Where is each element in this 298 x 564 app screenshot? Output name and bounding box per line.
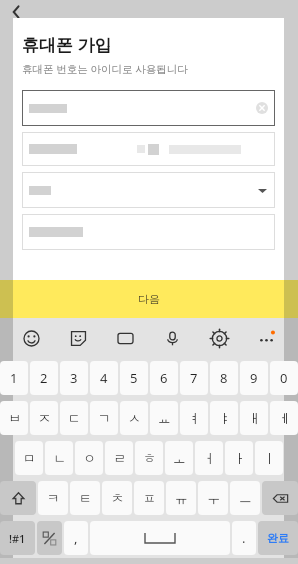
staticText: ㅊ <box>111 490 124 506</box>
button[interactable]: !#1 <box>0 521 35 555</box>
button[interactable]: , <box>64 521 88 555</box>
staticText: ㅐ <box>248 410 261 426</box>
staticText: ㅕ <box>188 410 201 426</box>
staticText: ㅡ <box>239 490 252 506</box>
button[interactable]: 2 <box>30 361 58 395</box>
button[interactable]: Emoji <box>8 318 55 358</box>
button[interactable]: ㅓ <box>195 441 223 475</box>
staticText: ㅁ <box>23 450 36 466</box>
staticText: ㄷ <box>68 410 81 426</box>
staticText: ㅛ <box>158 410 171 426</box>
button[interactable]: ㅏ <box>225 441 253 475</box>
button[interactable]: Back <box>4 1 26 23</box>
button[interactable]: ㅕ <box>180 401 208 435</box>
button[interactable]: ㅌ <box>70 481 100 515</box>
button[interactable]: 4 <box>90 361 118 395</box>
staticText: ㅋ <box>47 490 60 506</box>
button[interactable]: ㅂ <box>0 401 28 435</box>
button[interactable] <box>22 132 275 166</box>
button[interactable]: 다음 <box>13 280 284 318</box>
staticText: 0 <box>280 369 288 387</box>
button[interactable]: ㅍ <box>134 481 164 515</box>
staticText: 1 <box>10 369 18 387</box>
button[interactable]: Settings <box>196 318 243 358</box>
staticText: ㅈ <box>38 410 51 426</box>
button[interactable]: 1 <box>0 361 28 395</box>
button[interactable]: 7 <box>180 361 208 395</box>
button[interactable]: Change language <box>37 521 62 555</box>
staticText: ㅎ <box>143 450 156 466</box>
staticText: 완료 <box>267 531 289 545</box>
button[interactable]: ㅗ <box>165 441 193 475</box>
staticText: ㅓ <box>203 450 216 466</box>
staticText: ㅗ <box>173 450 186 466</box>
button[interactable]: 8 <box>210 361 238 395</box>
staticText: ㅔ <box>278 410 291 426</box>
staticText: ㄱ <box>98 410 111 426</box>
button[interactable]: 6 <box>150 361 178 395</box>
staticText: ㅣ <box>263 450 276 466</box>
button[interactable]: ㅑ <box>210 401 238 435</box>
staticText: 9 <box>250 369 258 387</box>
button[interactable]: Backspace <box>262 481 298 515</box>
button[interactable]: ㅅ <box>120 401 148 435</box>
button[interactable]: ㄷ <box>60 401 88 435</box>
button[interactable]: Shift <box>0 481 36 515</box>
staticText: 8 <box>220 369 228 387</box>
button[interactable]: ㅡ <box>230 481 260 515</box>
button[interactable]: 완료 <box>258 521 298 555</box>
button[interactable]: . <box>232 521 256 555</box>
button[interactable]: ㅣ <box>255 441 283 475</box>
button[interactable]: ㅈ <box>30 401 58 435</box>
button[interactable]: ㅠ <box>166 481 196 515</box>
staticText: ㅌ <box>79 490 92 506</box>
staticText: ㅇ <box>83 450 96 466</box>
staticText: 3 <box>70 369 78 387</box>
staticText: 7 <box>190 369 198 387</box>
button[interactable]: ㄴ <box>45 441 73 475</box>
button[interactable]: More options <box>243 318 290 358</box>
button[interactable]: ㅎ <box>135 441 163 475</box>
button[interactable]: ㅇ <box>75 441 103 475</box>
button[interactable]: ㅜ <box>198 481 228 515</box>
button[interactable]: ㄱ <box>90 401 118 435</box>
button[interactable]: 3 <box>60 361 88 395</box>
button[interactable]: Space <box>90 521 230 555</box>
button[interactable]: 9 <box>240 361 268 395</box>
staticText: ㅍ <box>143 490 156 506</box>
staticText: 휴대폰 가입 <box>22 33 112 56</box>
staticText: ㅂ <box>8 410 21 426</box>
staticText: 6 <box>160 369 168 387</box>
staticText: ㅑ <box>218 410 231 426</box>
button[interactable]: ㅊ <box>102 481 132 515</box>
staticText: , <box>74 529 78 547</box>
button[interactable]: GIF <box>102 318 149 358</box>
staticText: ㄹ <box>113 450 126 466</box>
staticText: ㅜ <box>207 490 220 506</box>
button[interactable]: ㄹ <box>105 441 133 475</box>
button[interactable]: Clear <box>256 102 268 114</box>
button[interactable]: ㅁ <box>15 441 43 475</box>
staticText: ㅏ <box>233 450 246 466</box>
staticText: 5 <box>130 369 138 387</box>
button[interactable]: ㅐ <box>240 401 268 435</box>
staticText: 4 <box>100 369 108 387</box>
staticText: !#1 <box>9 531 26 546</box>
button[interactable]: Stickers <box>55 318 102 358</box>
button[interactable]: 0 <box>270 361 298 395</box>
button[interactable] <box>22 214 275 250</box>
button[interactable]: ㅔ <box>270 401 298 435</box>
staticText: ㅠ <box>175 490 188 506</box>
button[interactable]: 5 <box>120 361 148 395</box>
button[interactable]: Clear <box>22 90 275 126</box>
staticText: 2 <box>40 369 48 387</box>
button[interactable] <box>22 172 275 208</box>
staticText: 휴대폰 번호는 아이디로 사용됩니다 <box>22 62 188 76</box>
staticText: . <box>242 529 246 547</box>
staticText: ㄴ <box>53 450 66 466</box>
button[interactable]: ㅋ <box>38 481 68 515</box>
button[interactable]: Voice input <box>149 318 196 358</box>
staticText: 다음 <box>138 292 160 306</box>
button[interactable]: ㅛ <box>150 401 178 435</box>
staticText: ㅅ <box>128 410 141 426</box>
